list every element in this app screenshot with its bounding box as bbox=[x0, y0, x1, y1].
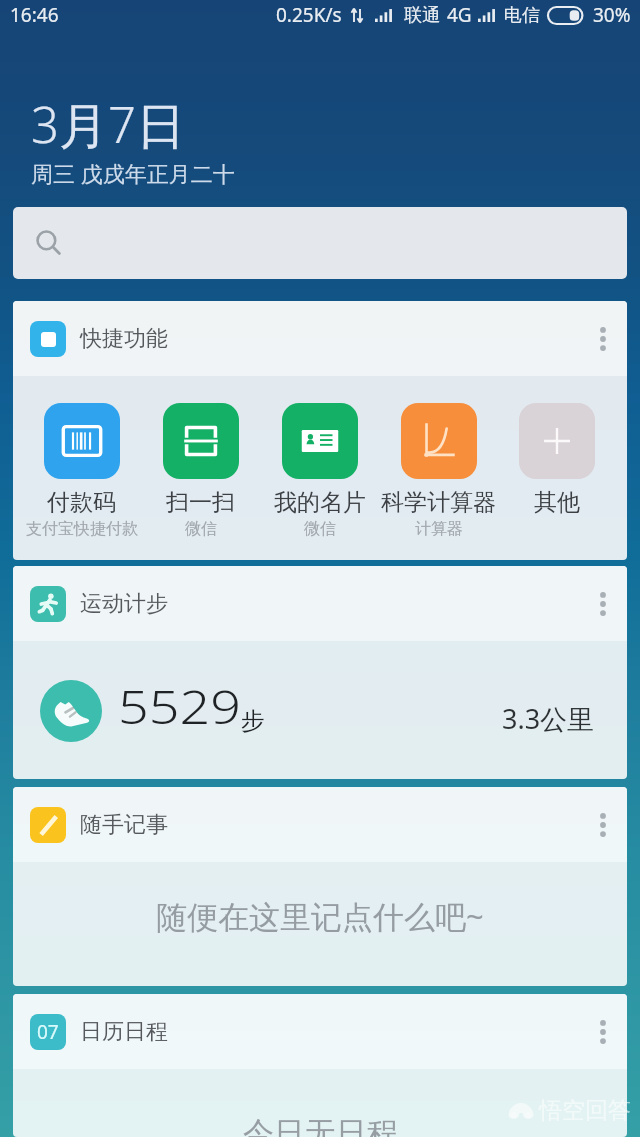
staticText: 日历日程 bbox=[80, 1018, 168, 1046]
staticText: 联通 bbox=[404, 4, 440, 27]
button[interactable]: 扫一扫 bbox=[141, 403, 260, 539]
staticText: 我的名片 bbox=[274, 488, 366, 517]
staticText: 支付宝快捷付款 bbox=[26, 519, 138, 539]
staticText: 扫一扫 bbox=[166, 488, 235, 517]
button[interactable]: 07 bbox=[13, 994, 627, 1137]
button[interactable]: 付款码 bbox=[22, 403, 141, 539]
button[interactable]: 随手记事 bbox=[13, 787, 627, 986]
button[interactable]: Search bbox=[13, 207, 627, 279]
staticText: 5529 bbox=[118, 675, 242, 738]
staticText: 16:46 bbox=[10, 2, 59, 28]
staticText: 微信 bbox=[304, 519, 336, 539]
staticText: 运动计步 bbox=[80, 590, 168, 618]
staticText: 付款码 bbox=[47, 488, 116, 517]
staticText: 其他 bbox=[534, 488, 580, 517]
button[interactable]: More options bbox=[583, 1012, 623, 1052]
staticText: 步 bbox=[241, 706, 265, 736]
button[interactable]: 运动计步 bbox=[13, 566, 627, 779]
staticText: 科学计算器 bbox=[381, 488, 496, 517]
button[interactable]: 科学计算器 bbox=[379, 403, 498, 539]
staticText: 4G bbox=[447, 2, 472, 28]
staticText: 07 bbox=[37, 1019, 59, 1045]
staticText: 计算器 bbox=[415, 519, 463, 539]
staticText: 随手记事 bbox=[80, 811, 168, 839]
staticText: 3月7日 bbox=[31, 91, 185, 158]
staticText: 30% bbox=[593, 2, 631, 28]
staticText: 随便在这里记点什么吧~ bbox=[156, 895, 484, 937]
staticText: 0.25K/s bbox=[276, 2, 342, 28]
button[interactable]: 我的名片 bbox=[260, 403, 379, 539]
button[interactable]: 其他 bbox=[498, 403, 616, 541]
staticText: 3.3公里 bbox=[502, 700, 595, 737]
staticText: 快捷功能 bbox=[80, 325, 168, 353]
button[interactable]: More options bbox=[583, 805, 623, 845]
staticText: 电信 bbox=[504, 4, 540, 27]
button[interactable]: More options bbox=[583, 319, 623, 359]
staticText: 微信 bbox=[185, 519, 217, 539]
staticText: 周三 戊戌年正月二十 bbox=[31, 158, 235, 188]
staticText: 今日无日程 bbox=[243, 1114, 398, 1137]
staticText: 悟空回答 bbox=[539, 1096, 631, 1125]
button[interactable]: More options bbox=[583, 584, 623, 624]
